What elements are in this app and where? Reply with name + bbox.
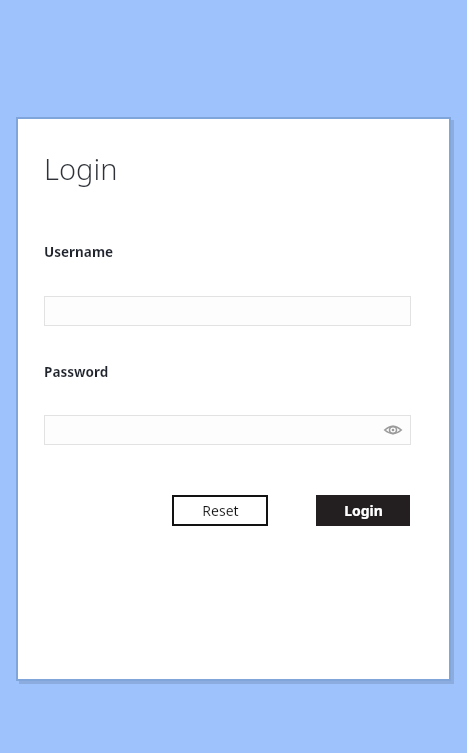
staticText: Login: [44, 149, 118, 188]
staticText: Username: [44, 243, 114, 261]
staticText: Password: [44, 363, 109, 381]
button[interactable]: Reset: [172, 495, 268, 526]
button[interactable]: [44, 296, 411, 326]
button[interactable]: Show password: [44, 415, 411, 445]
staticText: Login: [344, 501, 383, 520]
button[interactable]: Show password: [383, 420, 403, 440]
staticText: Reset: [202, 501, 239, 520]
button[interactable]: Login: [316, 495, 410, 526]
